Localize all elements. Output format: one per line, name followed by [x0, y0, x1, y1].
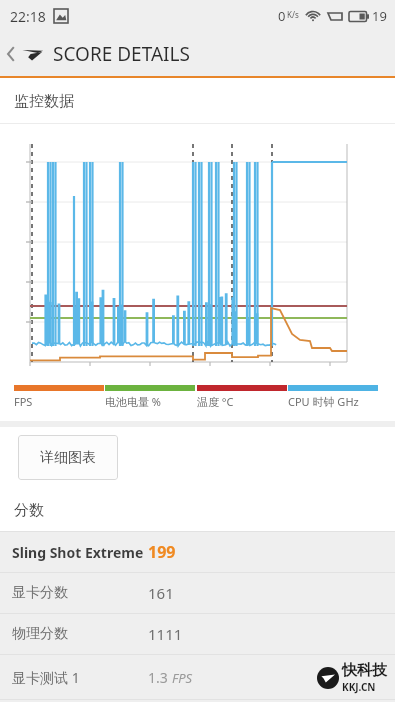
other: Back	[6, 45, 16, 63]
staticText: 监控数据	[14, 92, 74, 111]
button[interactable]: 显卡测试 1	[0, 655, 395, 699]
staticText: 1111	[148, 624, 183, 644]
staticText: 0	[278, 7, 286, 25]
staticText: 161	[148, 583, 174, 603]
button[interactable]: 物理分数	[0, 614, 395, 654]
staticText: 199	[148, 541, 176, 563]
staticText: 温度 °C	[197, 394, 234, 409]
button[interactable]: Sling Shot Extreme	[0, 532, 395, 572]
staticText: 电池电量 %	[105, 394, 162, 409]
staticText: 详细图表	[40, 449, 96, 467]
staticText: K/s	[287, 9, 299, 20]
button[interactable]: 详细图表	[18, 435, 118, 480]
staticText: 快科技	[342, 661, 387, 680]
staticText: 19	[372, 7, 387, 25]
staticText: FPS	[14, 394, 33, 409]
staticText: 1.3	[148, 668, 172, 687]
staticText: 分数	[14, 501, 44, 520]
staticText: 物理分数	[12, 625, 68, 643]
staticText: 22:18	[10, 7, 46, 26]
staticText: 显卡分数	[12, 584, 68, 602]
staticText: KKJ.CN	[342, 680, 376, 694]
staticText: SCORE DETAILS	[53, 41, 190, 67]
staticText: 显卡测试 1	[12, 668, 80, 687]
staticText: CPU 时钟 GHz	[288, 394, 359, 409]
button[interactable]: 显卡分数	[0, 573, 395, 613]
button[interactable]: Back	[0, 32, 395, 76]
staticText: Sling Shot Extreme	[12, 543, 144, 562]
staticText: FPS	[172, 669, 193, 687]
